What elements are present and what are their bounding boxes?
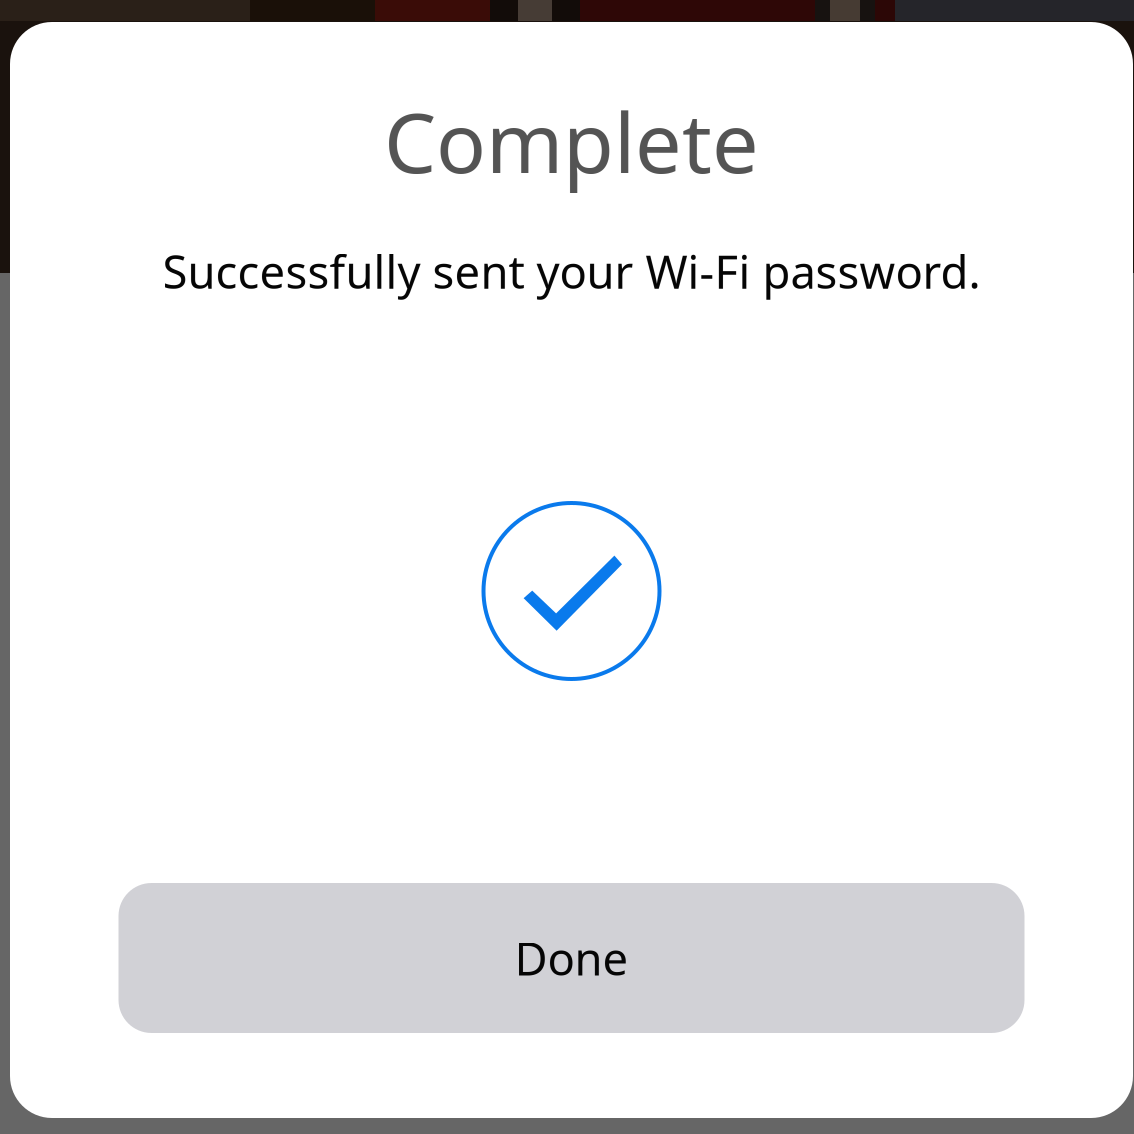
button[interactable]: Done: [118, 883, 1024, 1033]
staticText: Successfully sent your Wi-Fi password.: [162, 241, 980, 301]
staticText: Done: [514, 928, 628, 988]
staticText: Complete: [384, 86, 759, 196]
